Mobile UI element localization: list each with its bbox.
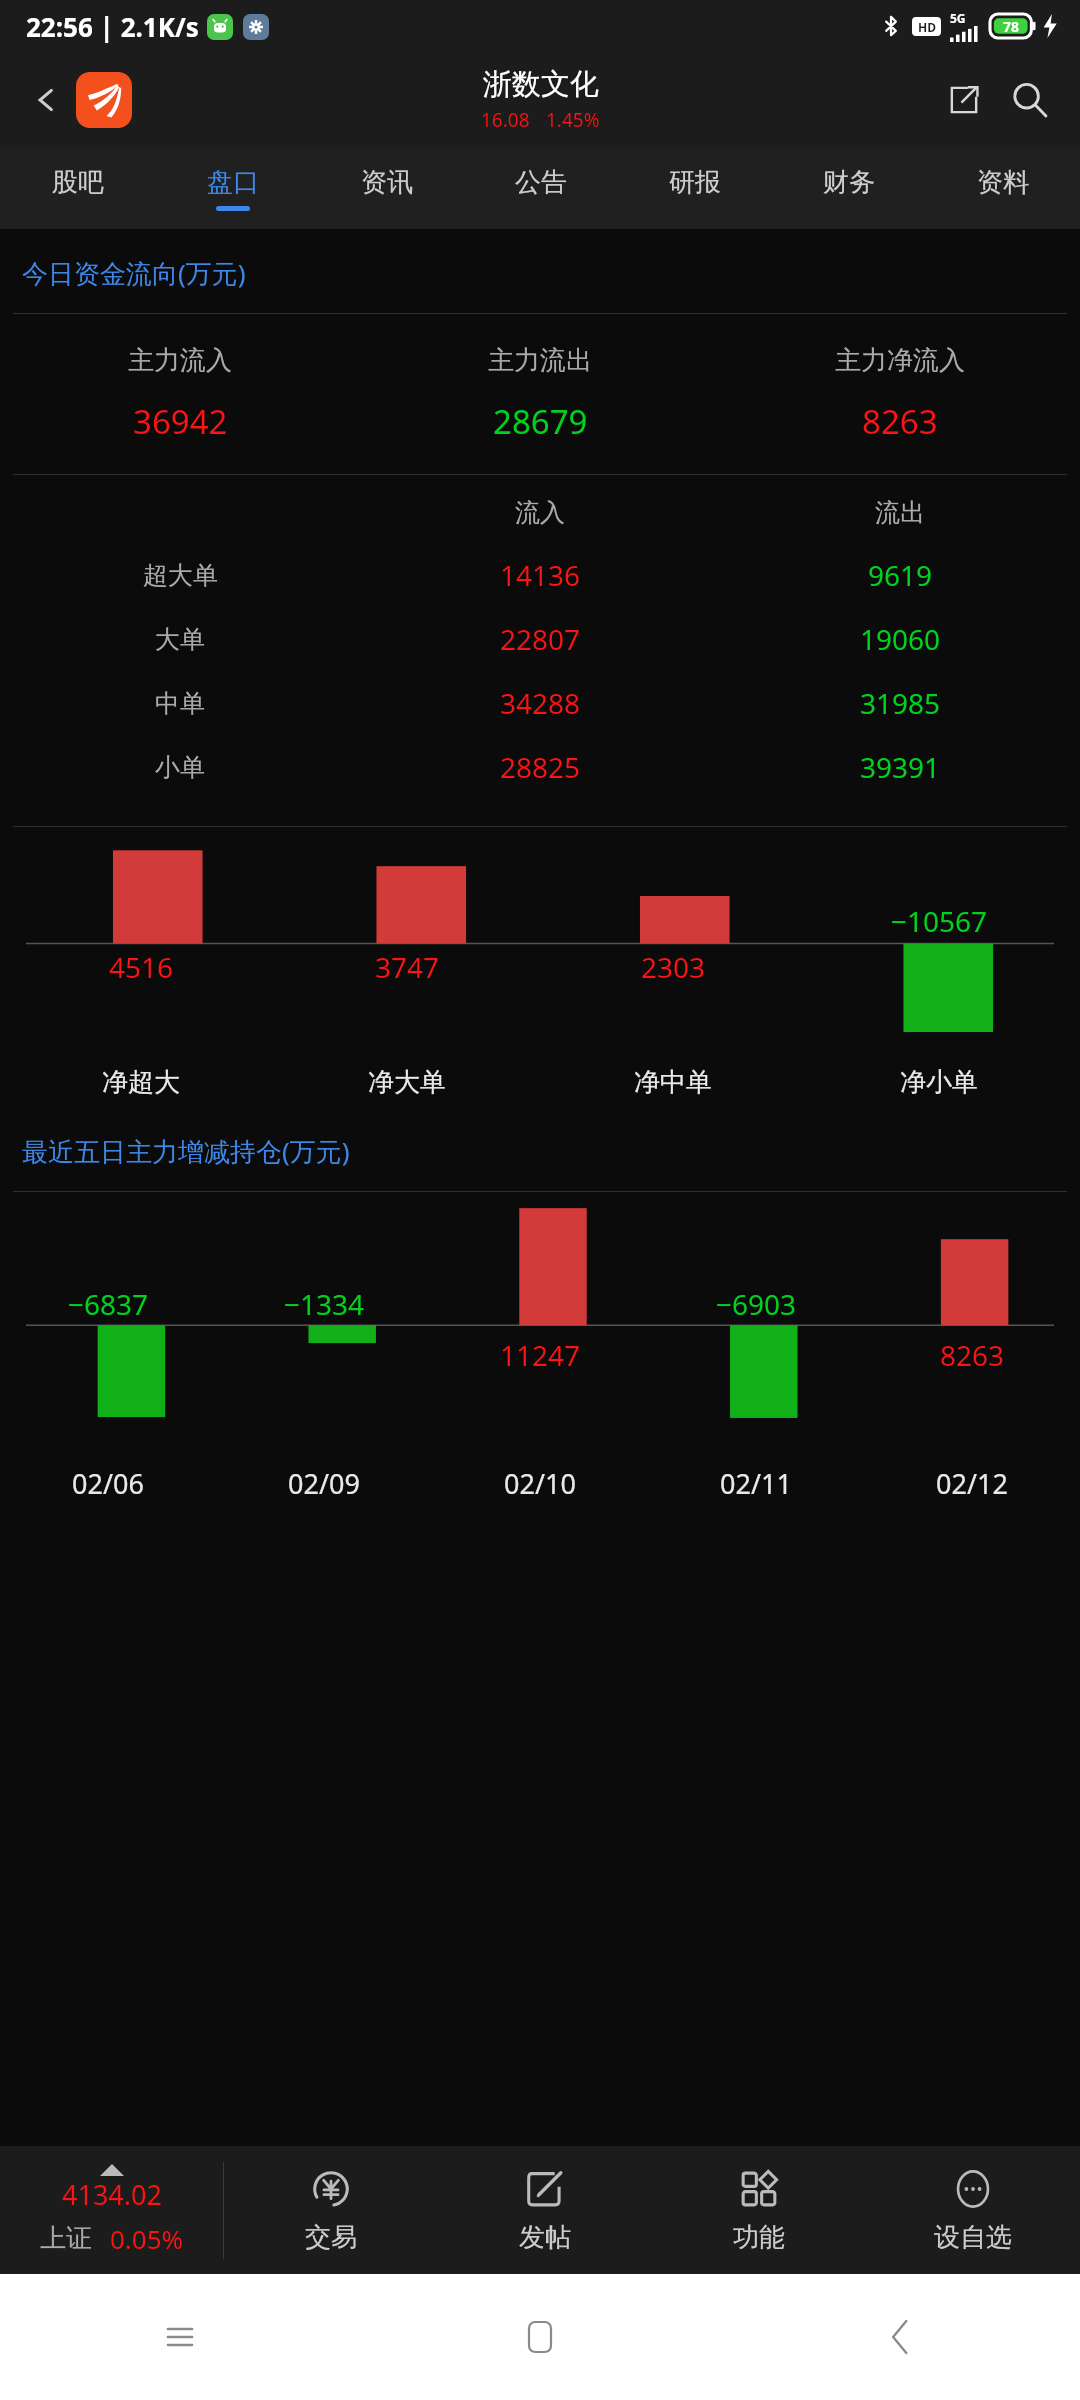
staticText: 功能 (733, 2221, 785, 2254)
staticText: 5G (950, 10, 966, 26)
staticText: 中单 (155, 688, 205, 719)
staticText: 28825 (500, 748, 581, 786)
staticText: −10567 (891, 902, 988, 940)
button[interactable]: 财务 (772, 147, 926, 229)
staticText: 31985 (860, 684, 941, 722)
staticText: 流入 (515, 497, 565, 528)
staticText: −6903 (716, 1285, 797, 1323)
button[interactable]: App logo (76, 72, 132, 128)
staticText: 4516 (109, 948, 174, 986)
staticText: 0.05% (110, 2221, 184, 2256)
button[interactable]: 交易 (224, 2146, 438, 2274)
button[interactable]: 盘口 (155, 147, 310, 229)
staticText: 盘口 (207, 166, 259, 199)
staticText: 财务 (823, 166, 875, 199)
staticText: 11247 (500, 1336, 581, 1374)
staticText: 19060 (860, 620, 941, 658)
staticText: 02/12 (936, 1465, 1008, 1502)
staticText: −1334 (284, 1285, 365, 1323)
button[interactable]: 发帖 (438, 2146, 652, 2274)
staticText: 研报 (669, 166, 721, 199)
staticText: −6837 (68, 1285, 149, 1323)
button[interactable]: 股吧 (0, 147, 155, 229)
staticText: 39391 (860, 748, 941, 786)
button[interactable]: 研报 (618, 147, 772, 229)
staticText: 02/10 (504, 1465, 576, 1502)
staticText: 超大单 (143, 560, 218, 591)
button[interactable]: Home (513, 2310, 567, 2364)
staticText: 16.08 (481, 107, 530, 133)
button[interactable]: Back (873, 2310, 927, 2364)
staticText: 34288 (500, 684, 581, 722)
staticText: 1.45% (546, 107, 600, 133)
button[interactable]: Back (20, 74, 72, 126)
staticText: 上证 (40, 2222, 92, 2255)
staticText: 02/09 (288, 1465, 360, 1502)
staticText: 8263 (940, 1336, 1005, 1374)
staticText: 浙数文化 (483, 66, 599, 103)
staticText: 22807 (500, 620, 581, 658)
staticText: 02/11 (720, 1465, 792, 1502)
button[interactable]: 资讯 (310, 147, 464, 229)
staticText: 资料 (977, 166, 1029, 199)
staticText: 设自选 (934, 2221, 1012, 2254)
staticText: 78 (1003, 17, 1020, 36)
button[interactable]: 功能 (652, 2146, 866, 2274)
staticText: 28679 (493, 399, 588, 444)
button[interactable]: Search (1002, 72, 1058, 128)
button[interactable]: 设自选 (866, 2146, 1080, 2274)
staticText: 大单 (155, 624, 205, 655)
staticText: 公告 (515, 166, 567, 199)
staticText: 净超大 (102, 1066, 180, 1099)
button[interactable]: 4134.02 (0, 2146, 223, 2274)
staticText: 最近五日主力增减持仓(万元) (22, 1133, 350, 1169)
staticText: 交易 (305, 2221, 357, 2254)
staticText: 22:56 | 2.1K/s (26, 9, 199, 44)
staticText: 4134.02 (62, 2176, 162, 2213)
button[interactable]: Share (936, 72, 992, 128)
staticText: 主力净流入 (835, 344, 965, 377)
staticText: 股吧 (52, 166, 104, 199)
button[interactable]: 资料 (926, 147, 1080, 229)
staticText: 2303 (641, 948, 706, 986)
staticText: 8263 (862, 399, 938, 444)
staticText: 净中单 (634, 1066, 712, 1099)
staticText: 主力流入 (128, 344, 232, 377)
staticText: 14136 (500, 556, 581, 594)
staticText: 36942 (133, 399, 228, 444)
staticText: 今日资金流向(万元) (22, 255, 246, 291)
button[interactable]: Recents (153, 2310, 207, 2364)
staticText: 净大单 (368, 1066, 446, 1099)
staticText: 流出 (875, 497, 925, 528)
staticText: 9619 (868, 556, 933, 594)
staticText: 小单 (155, 752, 205, 783)
button[interactable]: 公告 (464, 147, 618, 229)
staticText: HD (918, 19, 936, 35)
staticText: 主力流出 (488, 344, 592, 377)
staticText: 02/06 (72, 1465, 144, 1502)
staticText: 净小单 (900, 1066, 978, 1099)
staticText: 发帖 (519, 2221, 571, 2254)
staticText: 资讯 (361, 166, 413, 199)
staticText: 3747 (375, 948, 440, 986)
